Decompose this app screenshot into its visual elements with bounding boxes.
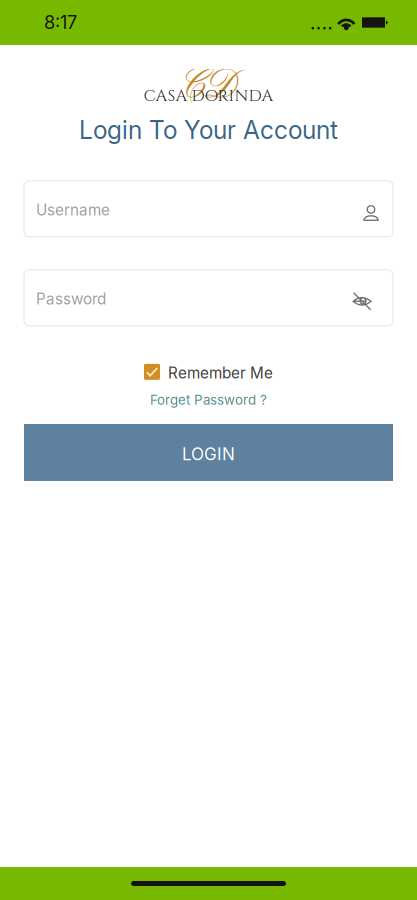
- staticText: CASA DORINDA: [143, 85, 273, 107]
- staticText: CD: [180, 63, 237, 113]
- staticText: Forget Password ?: [150, 392, 267, 408]
- staticText: Remember Me: [168, 364, 273, 382]
- staticText: Password: [36, 290, 106, 308]
- button[interactable]: Remember Me: [144, 363, 273, 381]
- staticText: LOGIN: [182, 444, 235, 464]
- button[interactable]: Username: [24, 181, 393, 237]
- staticText: Username: [36, 201, 110, 219]
- button[interactable]: Password: [24, 270, 393, 326]
- staticText: 8:17: [44, 11, 77, 33]
- button[interactable]: LOGIN: [24, 424, 393, 481]
- button[interactable]: Forget Password ?: [150, 392, 267, 408]
- staticText: Login To Your Account: [79, 115, 338, 145]
